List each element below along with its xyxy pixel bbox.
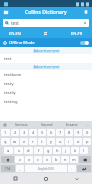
- button[interactable]: 2: [11, 129, 19, 136]
- staticText: i: [68, 139, 70, 144]
- button[interactable]: Space: [25, 165, 67, 172]
- button[interactable]: ,: [16, 165, 24, 172]
- button[interactable]: q: [1, 138, 10, 145]
- button[interactable]: Serious: [9, 121, 34, 128]
- button[interactable]: r: [29, 138, 37, 145]
- staticText: a: [7, 148, 10, 153]
- button[interactable]: 4: [29, 129, 37, 136]
- button[interactable]: 1: [1, 129, 10, 136]
- button[interactable]: ?1#: [1, 165, 15, 172]
- button[interactable]: 9: [74, 129, 82, 136]
- button[interactable]: s: [14, 147, 23, 154]
- button[interactable]: i: [65, 138, 73, 145]
- staticText: Insane: [66, 122, 78, 127]
- button[interactable]: z: [15, 156, 24, 163]
- button[interactable]: d: [24, 147, 33, 154]
- staticText: 5: [41, 130, 44, 135]
- button[interactable]: More suggestions: [84, 121, 91, 128]
- staticText: m: [72, 157, 76, 162]
- staticText: Advertisement: [33, 48, 60, 53]
- staticText: h: [56, 148, 59, 153]
- button[interactable]: Favourites: [83, 9, 89, 15]
- button[interactable]: x: [25, 156, 33, 163]
- button[interactable]: EN-EN: [0, 29, 30, 38]
- button[interactable]: m: [70, 156, 78, 163]
- button[interactable]: a: [4, 147, 13, 154]
- button[interactable]: 3: [20, 129, 28, 136]
- button[interactable]: j: [62, 147, 70, 154]
- button[interactable]: u: [56, 138, 64, 145]
- button[interactable]: Sacred: [34, 121, 59, 128]
- button[interactable]: 0: [83, 129, 91, 136]
- button[interactable]: Home: [30, 173, 61, 184]
- staticText: test: [4, 56, 12, 62]
- button[interactable]: test: [0, 54, 92, 63]
- button[interactable]: testily: [0, 88, 92, 97]
- button[interactable]: e: [20, 138, 28, 145]
- button[interactable]: 6: [47, 129, 55, 136]
- button[interactable]: Menu: [3, 9, 9, 15]
- staticText: ,: [19, 166, 21, 171]
- button[interactable]: h: [53, 147, 61, 154]
- staticText: English (US): [38, 167, 54, 171]
- button[interactable]: f: [34, 147, 43, 154]
- button[interactable]: v: [43, 156, 51, 163]
- button[interactable]: c: [34, 156, 42, 163]
- staticText: v: [46, 157, 49, 162]
- button[interactable]: k: [71, 147, 79, 154]
- button[interactable]: test: [3, 19, 89, 27]
- button[interactable]: testbone: [0, 70, 92, 79]
- staticText: z: [19, 157, 21, 162]
- button[interactable]: w: [11, 138, 19, 145]
- staticText: 6: [50, 130, 53, 135]
- button[interactable]: l: [80, 147, 88, 154]
- staticText: 0: [86, 130, 89, 135]
- staticText: Serious: [15, 122, 28, 127]
- button[interactable]: EN-FR: [61, 29, 92, 38]
- button[interactable]: Back: [61, 173, 92, 184]
- button[interactable]: Swap languages: [30, 29, 61, 38]
- button[interactable]: Shift: [1, 156, 14, 163]
- button[interactable]: Keyboard settings: [1, 121, 9, 128]
- staticText: d: [27, 148, 30, 153]
- button[interactable]: 7: [56, 129, 64, 136]
- staticText: e: [23, 139, 26, 144]
- button[interactable]: 8: [65, 129, 73, 136]
- staticText: 9: [77, 130, 80, 135]
- button[interactable]: t: [38, 138, 46, 145]
- staticText: .: [71, 166, 73, 171]
- staticText: n: [64, 157, 67, 162]
- button[interactable]: g: [44, 147, 52, 154]
- button[interactable]: 5: [38, 129, 46, 136]
- staticText: 4: [32, 130, 35, 135]
- staticText: Advertisement: [33, 64, 60, 69]
- button[interactable]: Enter: [77, 165, 91, 172]
- button[interactable]: testing: [0, 97, 92, 106]
- button[interactable]: Advertisement: [0, 47, 92, 54]
- staticText: testbone: [4, 72, 22, 78]
- button[interactable]: Backspace: [79, 156, 91, 163]
- staticText: r: [32, 139, 34, 144]
- staticText: w: [13, 139, 17, 144]
- staticText: j: [65, 148, 67, 153]
- button[interactable]: Clear: [83, 21, 87, 25]
- button[interactable]: n: [61, 156, 69, 163]
- staticText: o: [77, 139, 80, 144]
- staticText: 3: [23, 130, 26, 135]
- staticText: Collins Dictionary: [25, 9, 67, 16]
- staticText: 1: [4, 130, 7, 135]
- button[interactable]: testy: [0, 79, 92, 88]
- button[interactable]: Insane: [59, 121, 84, 128]
- button[interactable]: b: [52, 156, 60, 163]
- button[interactable]: Offline Mode: [0, 38, 92, 47]
- staticText: Offline Mode: [9, 40, 35, 46]
- button[interactable]: Advertisement: [0, 63, 92, 70]
- staticText: q: [4, 139, 7, 144]
- staticText: b: [55, 157, 58, 162]
- button[interactable]: p: [83, 138, 91, 145]
- staticText: s: [18, 148, 20, 153]
- button[interactable]: .: [68, 165, 76, 172]
- button[interactable]: Recents: [0, 173, 30, 184]
- button[interactable]: y: [47, 138, 55, 145]
- button[interactable]: o: [74, 138, 82, 145]
